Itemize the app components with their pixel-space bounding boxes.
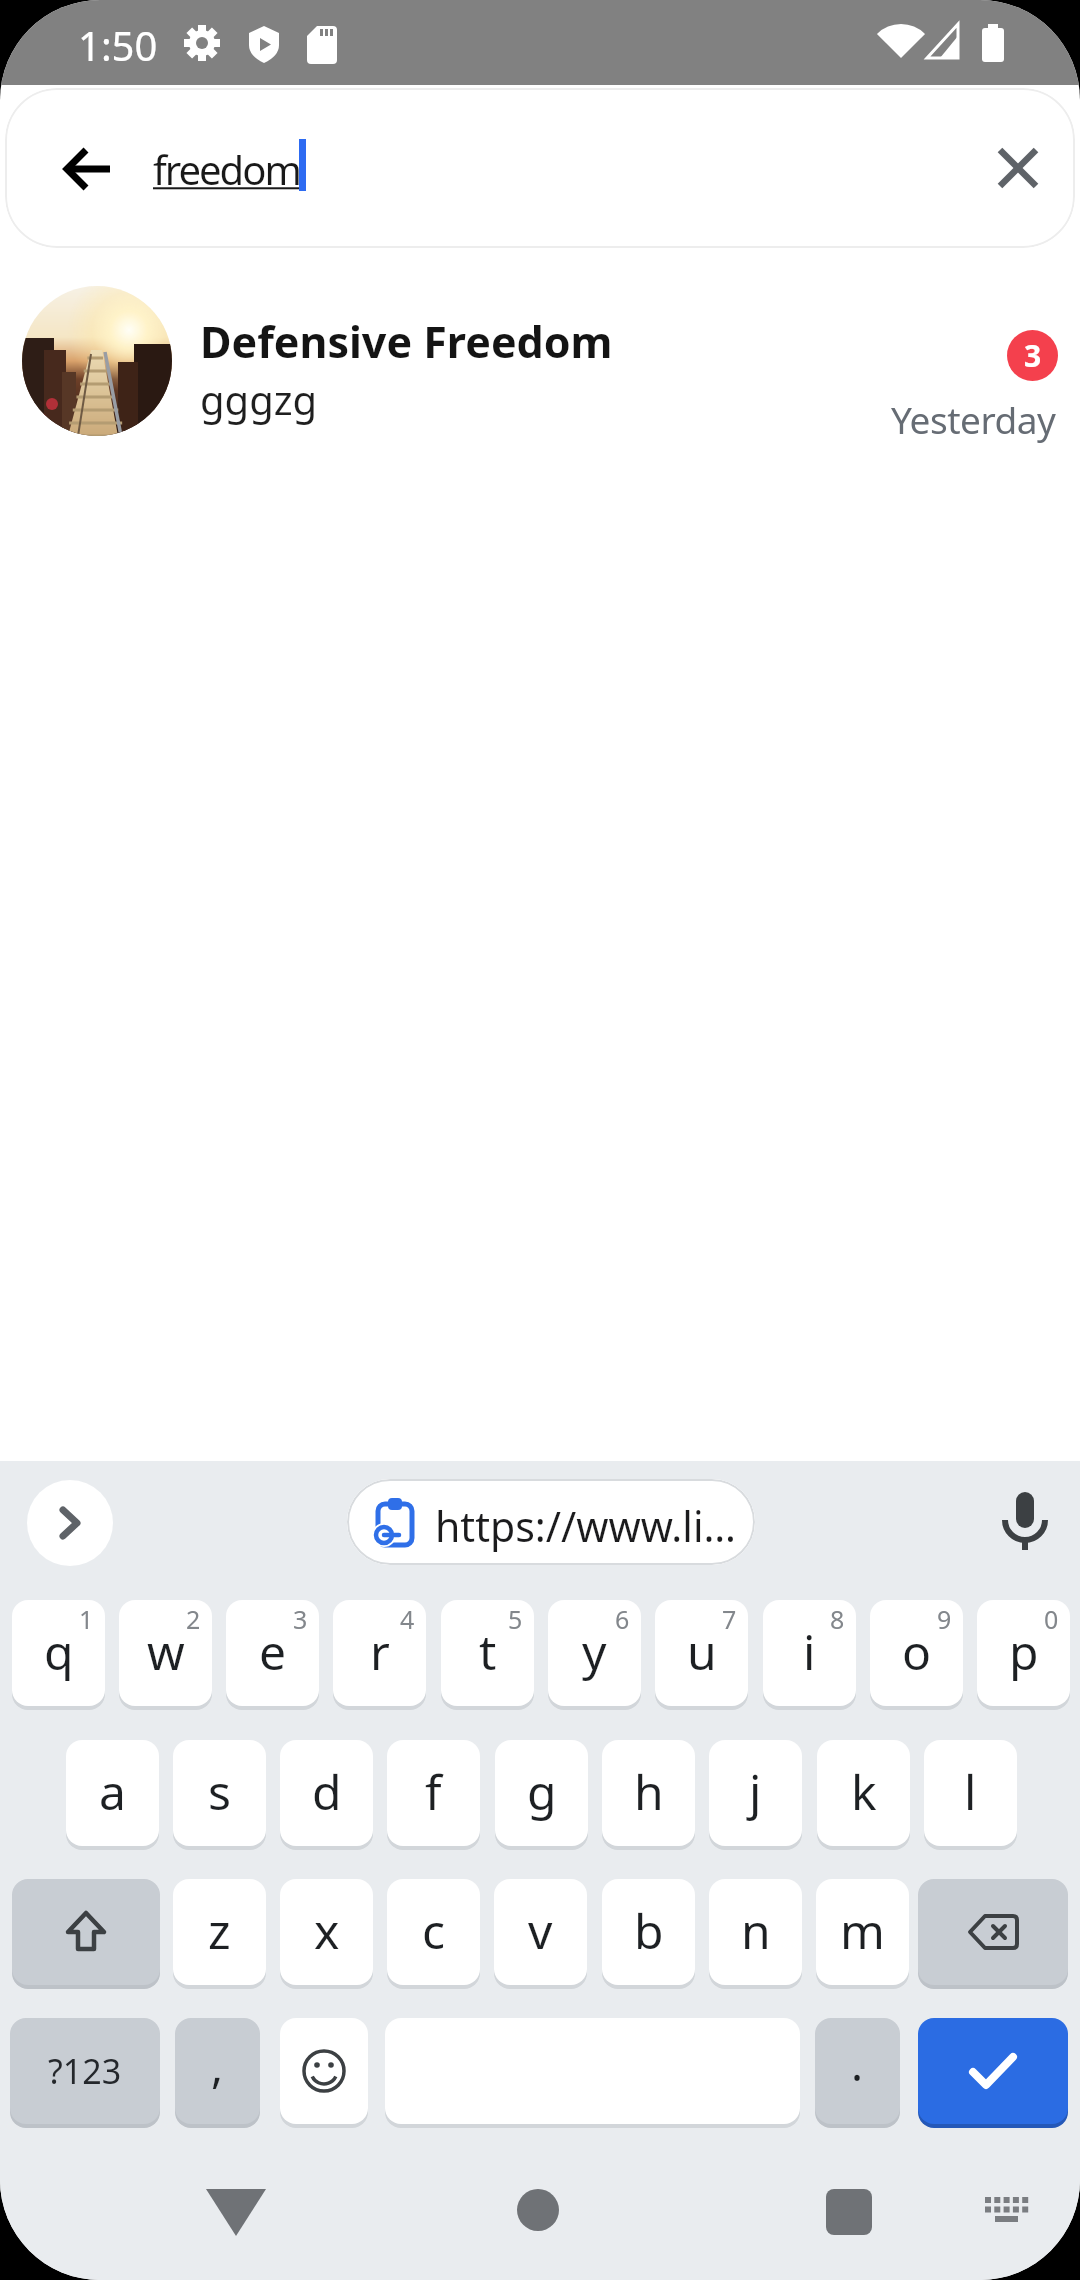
staticText: w — [147, 1619, 185, 1684]
button[interactable]: c — [387, 1879, 480, 1985]
button[interactable] — [27, 1480, 113, 1566]
staticText: Defensive Freedom — [200, 312, 613, 371]
button[interactable]: . — [815, 2018, 900, 2124]
staticText: 0 — [1044, 1602, 1059, 1636]
staticText: l — [964, 1759, 977, 1824]
staticText: 3 — [1024, 335, 1042, 376]
staticText: j — [749, 1759, 762, 1824]
button[interactable]: n — [709, 1879, 802, 1985]
button[interactable] — [280, 2018, 368, 2124]
staticText: freedom — [153, 142, 300, 196]
staticText: 1 — [79, 1602, 94, 1636]
staticText: Yesterday — [891, 394, 1056, 444]
button[interactable] — [50, 131, 126, 207]
staticText: 2 — [186, 1602, 201, 1636]
staticText: x — [314, 1898, 340, 1963]
staticText: f — [425, 1759, 442, 1824]
staticText: 1:50 — [78, 18, 158, 72]
button[interactable] — [980, 130, 1056, 206]
button[interactable]: d — [280, 1740, 373, 1846]
button[interactable] — [980, 2195, 1032, 2231]
button[interactable]: m — [816, 1879, 909, 1985]
staticText: h — [634, 1759, 664, 1824]
staticText: c — [422, 1898, 446, 1963]
button[interactable]: e — [226, 1600, 319, 1706]
button[interactable]: a — [66, 1740, 159, 1846]
button[interactable]: Defensive Freedom — [0, 262, 1080, 460]
staticText: a — [99, 1759, 126, 1824]
button[interactable]: q — [12, 1600, 105, 1706]
staticText: o — [902, 1619, 932, 1684]
staticText: 8 — [830, 1602, 845, 1636]
button[interactable]: u — [655, 1600, 748, 1706]
staticText: 5 — [508, 1602, 523, 1636]
button[interactable] — [918, 1879, 1068, 1985]
staticText: , — [211, 2035, 224, 2096]
button[interactable]: w — [119, 1600, 212, 1706]
staticText: q — [44, 1619, 74, 1684]
staticText: g — [527, 1759, 557, 1824]
button[interactable]: b — [602, 1879, 695, 1985]
button[interactable]: freedom — [5, 88, 1075, 248]
staticText: e — [259, 1619, 287, 1684]
staticText: i — [803, 1619, 816, 1684]
staticText: 6 — [615, 1602, 630, 1636]
staticText: y — [582, 1619, 607, 1684]
staticText: v — [528, 1898, 553, 1963]
button[interactable]: o — [870, 1600, 963, 1706]
button[interactable] — [826, 2189, 872, 2235]
staticText: k — [851, 1759, 877, 1824]
staticText: t — [479, 1619, 497, 1684]
button[interactable]: s — [173, 1740, 266, 1846]
staticText: n — [741, 1898, 771, 1963]
staticText: r — [370, 1619, 390, 1684]
button[interactable]: ?123 — [10, 2018, 160, 2124]
button[interactable]: , — [175, 2018, 260, 2124]
button[interactable]: https://www.li… — [347, 1479, 755, 1565]
staticText: z — [208, 1898, 231, 1963]
staticText: gggzg — [200, 372, 318, 426]
staticText: 4 — [400, 1602, 415, 1636]
button[interactable] — [918, 2018, 1068, 2124]
staticText: 7 — [722, 1602, 737, 1636]
button[interactable]: i — [763, 1600, 856, 1706]
staticText: 3 — [293, 1602, 308, 1636]
button[interactable]: l — [924, 1740, 1017, 1846]
button[interactable] — [206, 2189, 266, 2236]
staticText: https://www.li… — [435, 1498, 736, 1554]
button[interactable]: t — [441, 1600, 534, 1706]
staticText: 9 — [937, 1602, 952, 1636]
button[interactable]: v — [494, 1879, 587, 1985]
button[interactable]: h — [602, 1740, 695, 1846]
button[interactable]: f — [387, 1740, 480, 1846]
staticText: b — [634, 1898, 664, 1963]
button[interactable]: p — [977, 1600, 1070, 1706]
button[interactable]: j — [709, 1740, 802, 1846]
staticText: . — [851, 2033, 864, 2094]
button[interactable]: y — [548, 1600, 641, 1706]
staticText: s — [208, 1759, 231, 1824]
staticText: u — [687, 1619, 717, 1684]
button[interactable]: g — [495, 1740, 588, 1846]
staticText: p — [1009, 1619, 1039, 1684]
button[interactable]: z — [173, 1879, 266, 1985]
staticText: d — [312, 1759, 342, 1824]
staticText: ?123 — [48, 2048, 122, 2094]
button[interactable]: r — [333, 1600, 426, 1706]
button[interactable] — [517, 2189, 559, 2231]
button[interactable] — [12, 1879, 160, 1985]
button[interactable]: k — [817, 1740, 910, 1846]
button[interactable] — [985, 1481, 1065, 1561]
button[interactable]: x — [280, 1879, 373, 1985]
staticText: m — [840, 1898, 885, 1963]
